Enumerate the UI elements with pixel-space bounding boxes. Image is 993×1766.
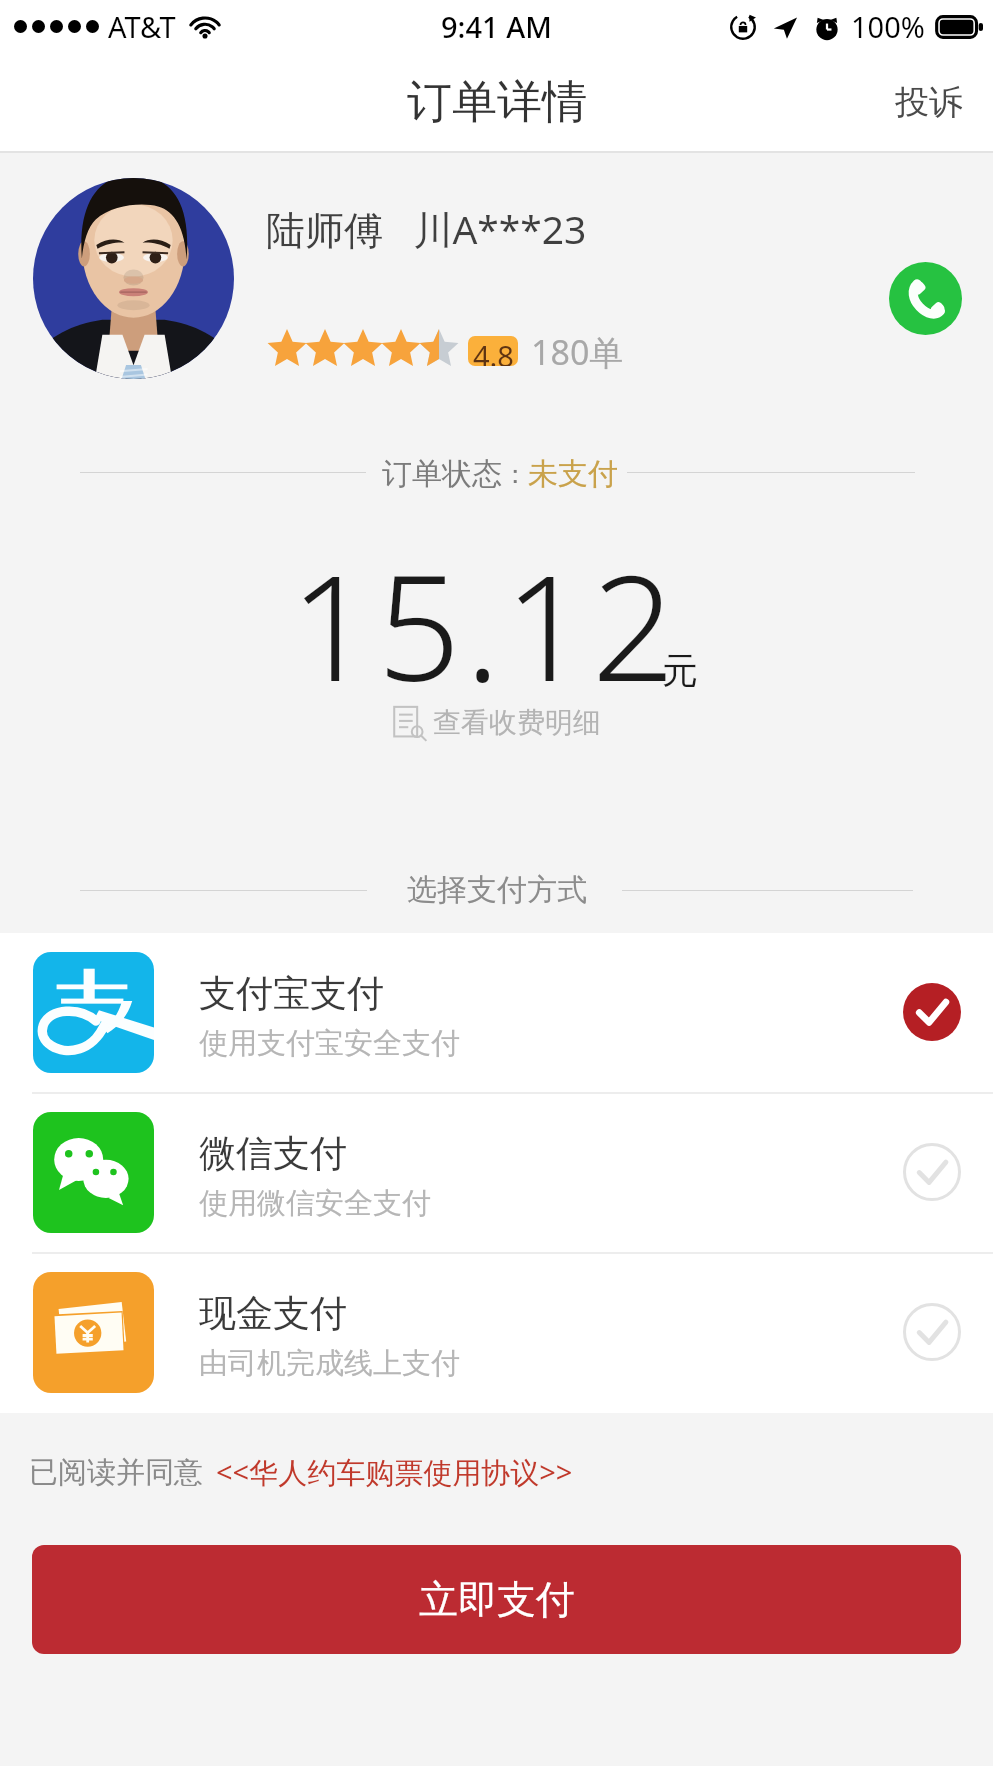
staticText: 使用微信安全支付 bbox=[199, 1185, 431, 1222]
staticText: 订单详情 bbox=[407, 74, 587, 131]
button[interactable]: 现金支付 bbox=[0, 1253, 993, 1411]
staticText: 9:41 AM bbox=[441, 7, 552, 46]
staticText: 查看收费明细 bbox=[433, 705, 601, 740]
staticText: 立即支付 bbox=[419, 1575, 575, 1624]
staticText: 元 bbox=[662, 648, 698, 693]
staticText: 未支付 bbox=[528, 455, 618, 493]
staticText: 微信支付 bbox=[199, 1130, 347, 1177]
button[interactable]: 支付宝支付 bbox=[0, 933, 993, 1091]
button[interactable]: 已阅读并同意 bbox=[29, 1452, 573, 1492]
staticText: 支付宝支付 bbox=[199, 970, 384, 1017]
staticText: 4.8 bbox=[473, 336, 514, 366]
staticText: 现金支付 bbox=[199, 1290, 347, 1337]
button[interactable]: 投诉 bbox=[865, 59, 993, 146]
staticText: 使用支付宝安全支付 bbox=[199, 1025, 460, 1062]
staticText: 180单 bbox=[531, 329, 624, 375]
staticText: <<华人约车购票使用协议>> bbox=[216, 1452, 573, 1492]
staticText: 陆师傅 川A***23 bbox=[266, 202, 587, 255]
staticText: 15.12 bbox=[290, 525, 680, 724]
button[interactable]: Call driver bbox=[889, 262, 962, 335]
staticText: 投诉 bbox=[895, 81, 963, 124]
button[interactable]: 微信支付 bbox=[0, 1093, 993, 1251]
staticText: AT&T bbox=[108, 7, 176, 46]
staticText: 订单状态 bbox=[382, 455, 502, 493]
staticText: 由司机完成线上支付 bbox=[199, 1345, 460, 1382]
button[interactable]: 立即支付 bbox=[32, 1545, 961, 1654]
staticText: 已阅读并同意 bbox=[29, 1454, 203, 1491]
button[interactable]: 查看收费明细 bbox=[392, 704, 601, 741]
staticText: 100% bbox=[851, 7, 925, 46]
staticText: 选择支付方式 bbox=[407, 871, 587, 909]
staticText: ： bbox=[502, 458, 528, 491]
